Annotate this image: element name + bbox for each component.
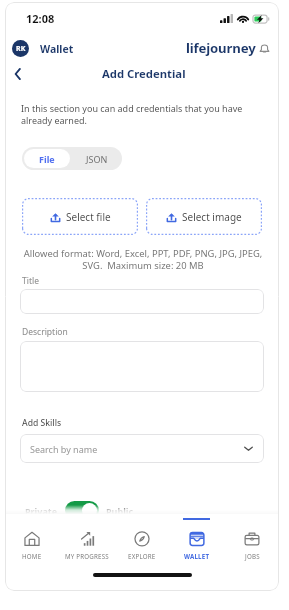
staticText: HOME [22,552,42,560]
staticText: JSON [86,153,108,165]
staticText: Allowed format: Word, Excel, PPT, PDF, P… [22,247,264,272]
button[interactable]: lifejourney [186,39,256,57]
staticText: File [39,153,55,165]
staticText: 12:08 [26,11,55,26]
button[interactable]: MY PROGRESS [59,514,114,565]
button[interactable]: EXPLORE [114,514,169,565]
button[interactable] [20,289,264,314]
staticText: JOBS [245,552,260,560]
staticText: Wallet [40,42,74,56]
staticText: Public [106,505,134,517]
staticText: Search by name [30,443,98,455]
button[interactable]: WALLET [169,514,224,565]
button[interactable] [20,341,264,392]
staticText: In this section you can add credentials … [21,102,255,126]
button[interactable]: JSON [72,147,122,170]
staticText: EXPLORE [128,552,156,560]
button[interactable]: HOME [5,514,59,565]
staticText: Private [25,505,58,517]
staticText: Add Credential [102,66,186,81]
staticText: RK [16,44,26,54]
button[interactable]: JOBS [224,514,279,565]
button[interactable]: Back [8,64,28,84]
staticText: Description [22,326,68,338]
button[interactable]: Select image [146,198,262,235]
staticText: Title [22,275,39,287]
button[interactable]: Search by name [20,434,264,463]
button[interactable]: RK [12,40,74,57]
staticText: Select file [66,210,111,224]
staticText: Add Skills [22,417,62,429]
button[interactable]: File [24,149,70,168]
button[interactable] [65,501,99,520]
staticText: MY PROGRESS [65,552,109,560]
button[interactable]: Select file [22,198,138,235]
staticText: WALLET [184,552,210,560]
button[interactable]: Notifications [258,42,271,55]
staticText: Select image [182,210,242,224]
